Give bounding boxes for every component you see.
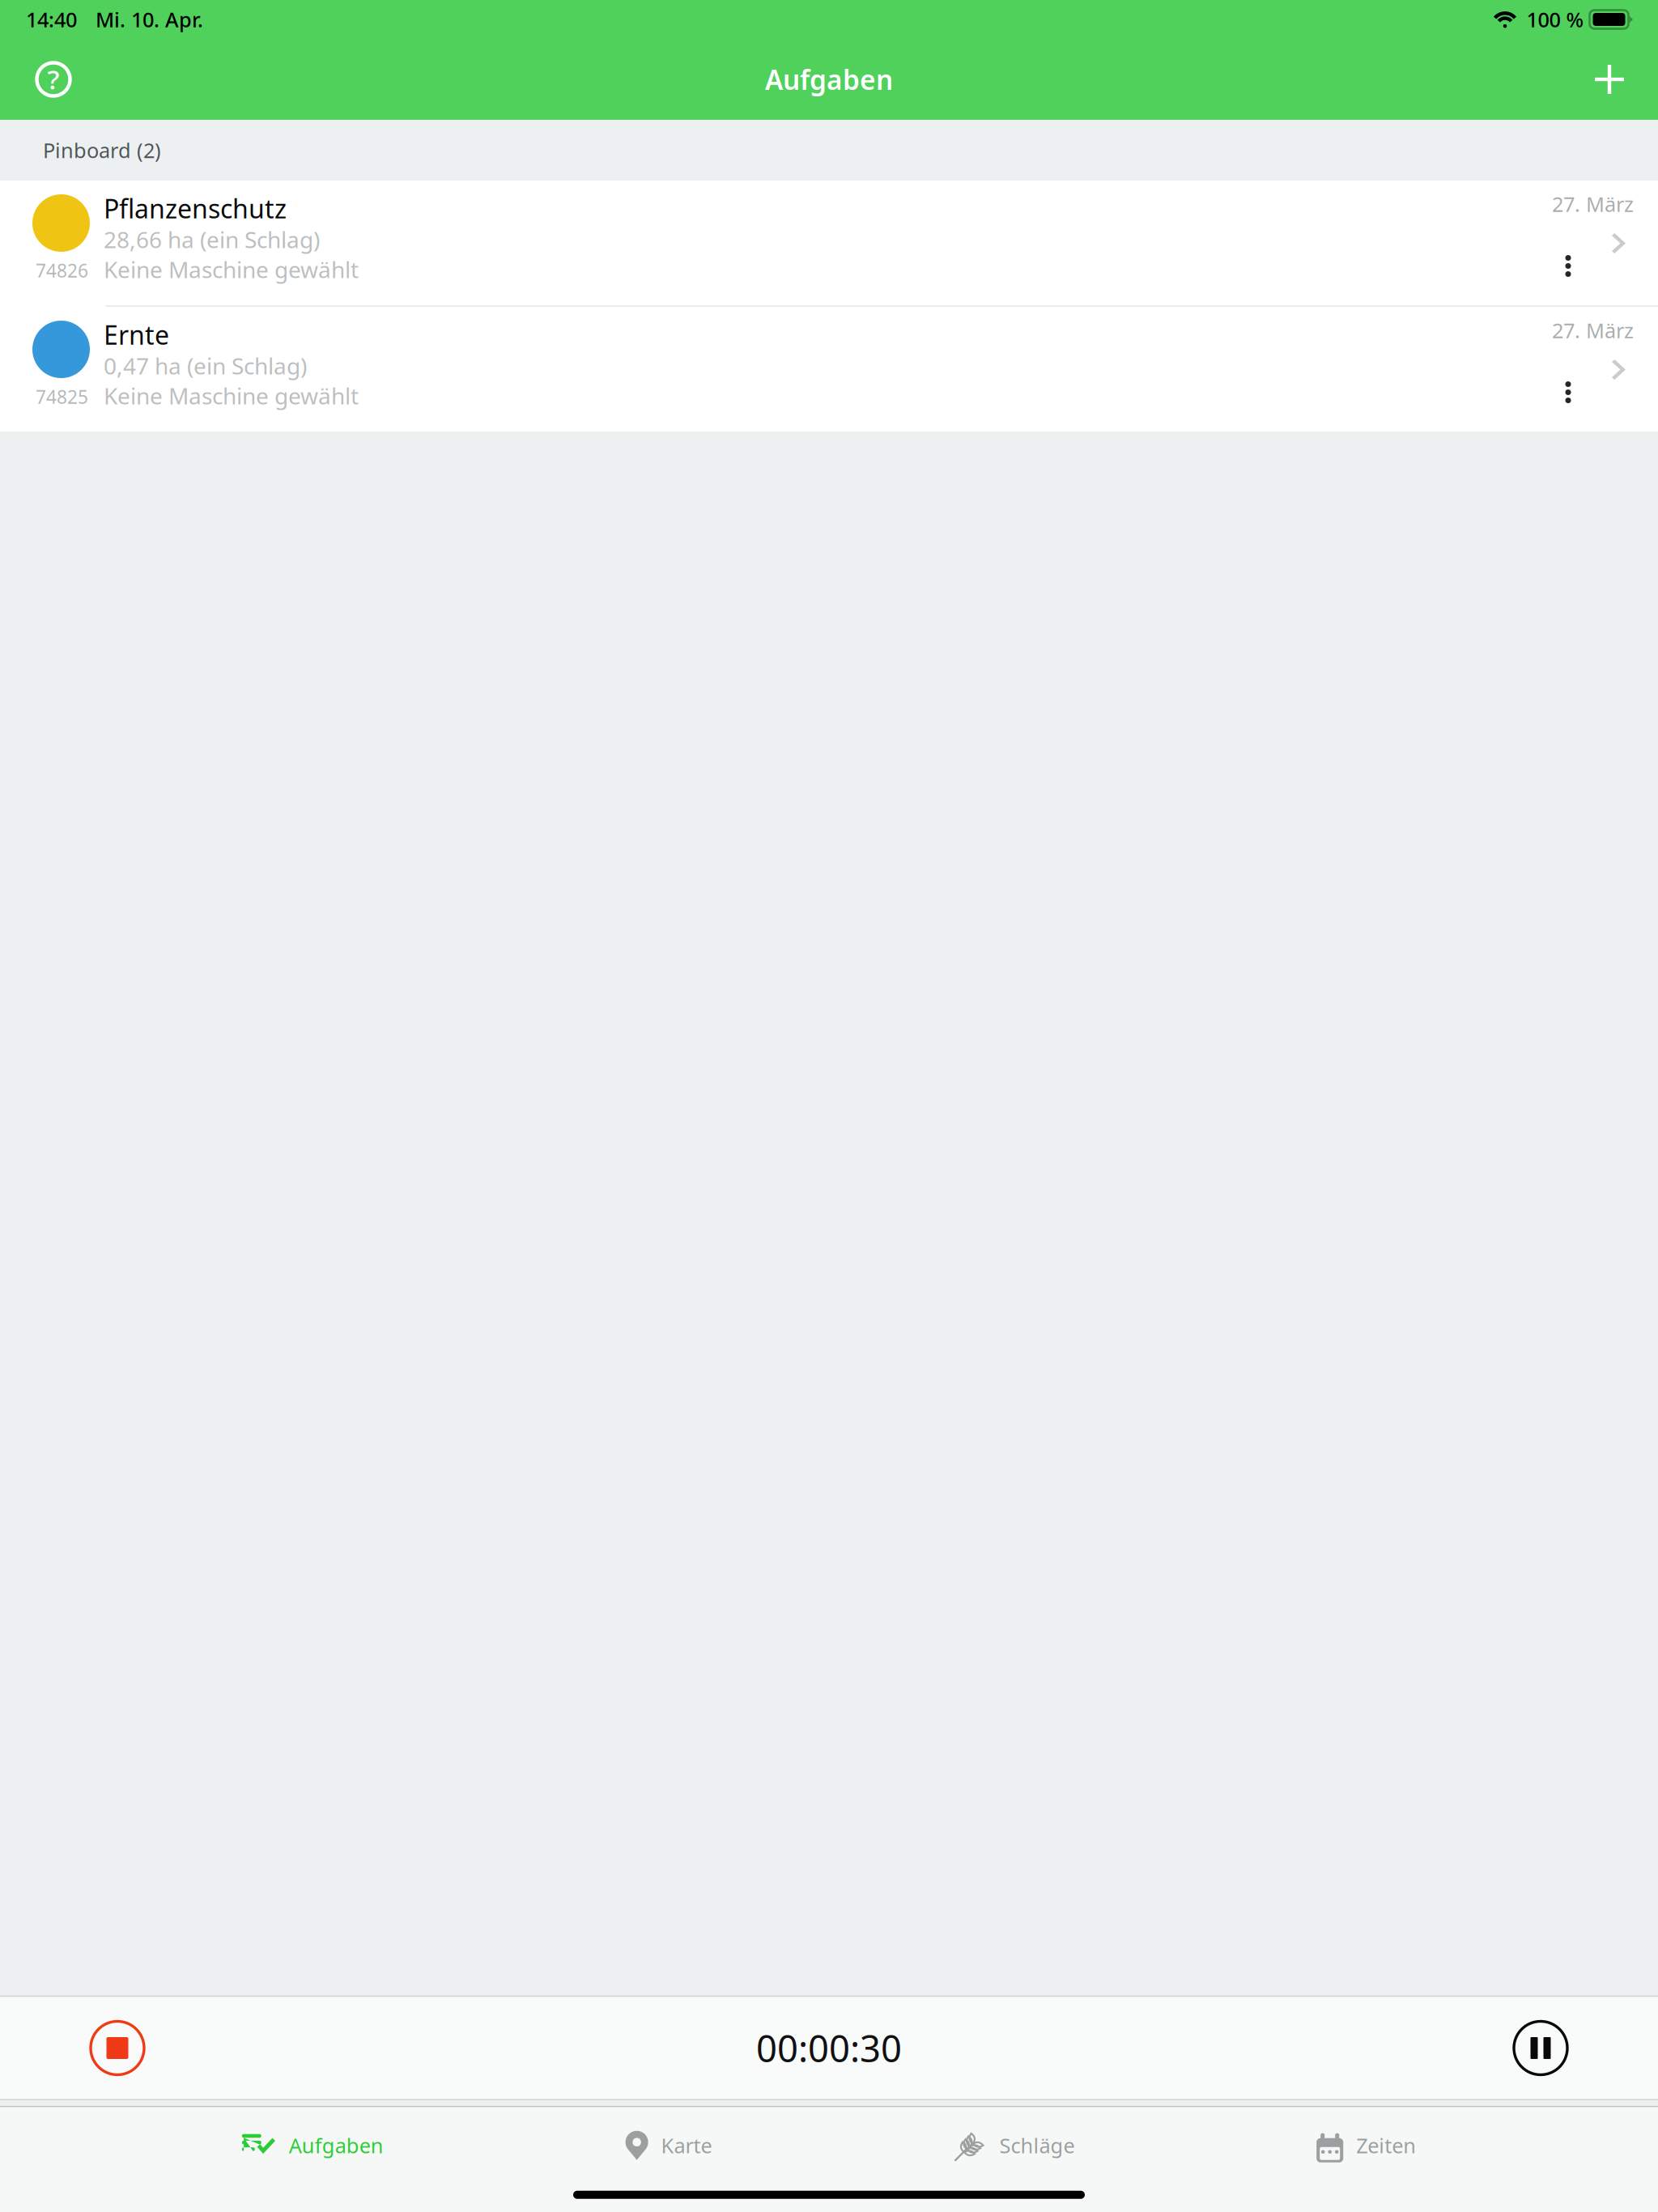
button[interactable]: Mehr (1554, 252, 1582, 280)
staticText: 27. März (1552, 190, 1634, 217)
button[interactable]: Schläge (954, 2107, 1075, 2184)
staticText: 74825 (36, 385, 88, 409)
button[interactable]: Stopp (77, 2008, 158, 2089)
staticText: 74826 (36, 258, 88, 283)
staticText: Karte (661, 2132, 712, 2159)
staticText: Pinboard (2) (43, 137, 161, 164)
staticText: Aufgaben (765, 61, 893, 97)
staticText: 28,66 ha (ein Schlag) (104, 224, 320, 254)
button[interactable]: Karte (625, 2107, 712, 2184)
button[interactable]: Zeiten (1317, 2107, 1416, 2184)
staticText: 27. März (1552, 317, 1634, 344)
button[interactable]: 74826 (0, 181, 1658, 305)
staticText: Zeiten (1356, 2132, 1416, 2159)
button[interactable]: Aufgabe hinzufügen (1587, 57, 1632, 102)
staticText: 14:40 (26, 6, 77, 33)
staticText: 00:00:30 (756, 2024, 902, 2072)
staticText: Pflanzenschutz (104, 191, 287, 225)
button[interactable]: Aufgaben (242, 2107, 384, 2184)
staticText: 100 % (1526, 6, 1584, 33)
button[interactable]: Pause (1500, 2008, 1581, 2089)
button[interactable]: Mehr (1554, 379, 1582, 406)
staticText: Ernte (104, 317, 169, 352)
staticText: Mi. 10. Apr. (96, 6, 203, 33)
staticText: ? (47, 61, 60, 97)
button[interactable]: Hilfe (31, 57, 76, 102)
staticText: Keine Maschine gewählt (104, 381, 359, 411)
staticText: Keine Maschine gewählt (104, 254, 359, 284)
staticText: Schläge (999, 2132, 1075, 2159)
staticText: 0,47 ha (ein Schlag) (104, 351, 307, 381)
staticText: Aufgaben (289, 2132, 384, 2159)
button[interactable]: 74825 (0, 307, 1658, 432)
